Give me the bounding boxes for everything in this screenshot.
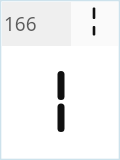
button[interactable]: 166 bbox=[2, 2, 71, 46]
staticText: 166 bbox=[4, 11, 37, 37]
button[interactable]: More options bbox=[71, 2, 118, 46]
